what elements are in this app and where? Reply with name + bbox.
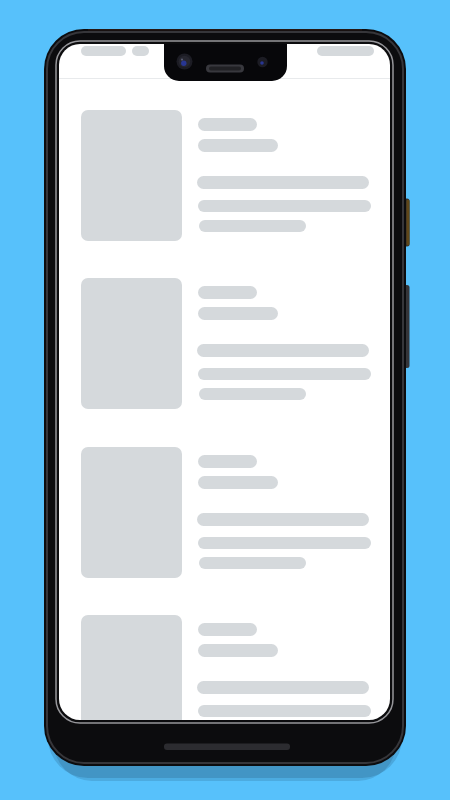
button[interactable] bbox=[81, 447, 370, 578]
button[interactable] bbox=[81, 615, 370, 720]
button[interactable] bbox=[81, 110, 370, 241]
button[interactable] bbox=[81, 278, 370, 409]
